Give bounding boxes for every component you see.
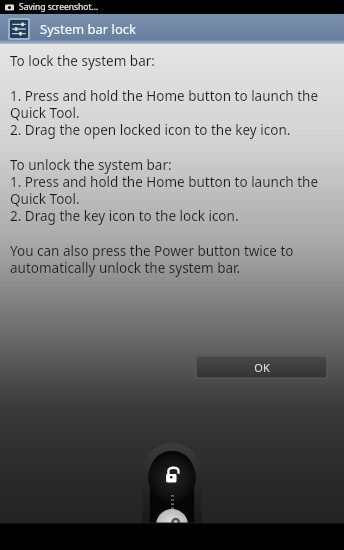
staticText: To lock the system bar:	[10, 52, 155, 70]
staticText: You can also press the Power button twic…	[10, 242, 294, 277]
staticText: System bar lock	[40, 20, 136, 38]
button[interactable]: Locked	[163, 466, 181, 484]
button[interactable]: Key	[156, 509, 188, 541]
staticText: Saving screenshot…	[19, 1, 99, 13]
staticText: To unlock the system bar: 1. Press and h…	[10, 156, 319, 225]
staticText: mobile.ir	[341, 443, 344, 515]
button[interactable]: OK	[196, 356, 327, 378]
staticText: OK	[254, 360, 270, 375]
staticText: 1. Press and hold the Home button to lau…	[10, 87, 319, 139]
